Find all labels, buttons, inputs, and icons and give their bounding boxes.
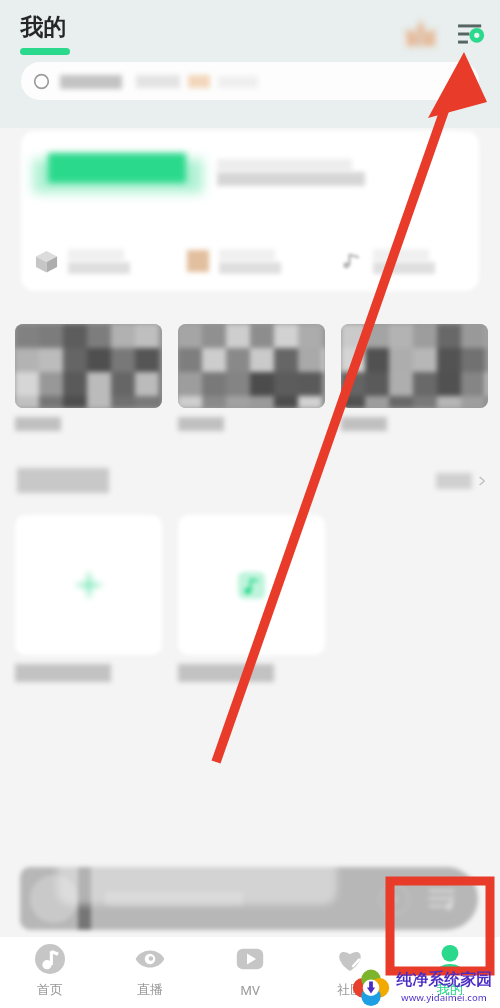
button[interactable]: 直播	[100, 937, 200, 1008]
button[interactable]: Play	[20, 867, 478, 930]
button[interactable]	[21, 231, 173, 291]
button[interactable]	[326, 231, 479, 291]
staticText: 直播	[137, 981, 163, 997]
button[interactable]: VIP	[398, 10, 446, 58]
staticText: www.yidaimei.com	[401, 991, 487, 1004]
button[interactable]: Settings	[448, 12, 492, 56]
button[interactable]	[341, 324, 488, 408]
button[interactable]	[178, 324, 325, 408]
button[interactable]: MV	[200, 937, 300, 1008]
button[interactable]: Playlist	[422, 878, 464, 920]
button[interactable]	[178, 515, 325, 655]
staticText: 社区	[337, 981, 363, 997]
button[interactable]	[15, 515, 162, 655]
button[interactable]: 首页	[0, 937, 100, 1008]
button[interactable]: 我的	[400, 937, 500, 1008]
button[interactable]	[173, 231, 326, 291]
staticText: MV	[240, 981, 260, 999]
staticText: 首页	[37, 981, 63, 997]
button[interactable]	[21, 62, 479, 100]
staticText: 我的	[437, 981, 463, 997]
button[interactable]: Play	[374, 879, 414, 919]
button[interactable]	[15, 324, 162, 408]
button[interactable]: 社区	[300, 937, 400, 1008]
staticText: 纯净系统家园	[396, 970, 492, 990]
staticText: 我的	[20, 13, 66, 42]
